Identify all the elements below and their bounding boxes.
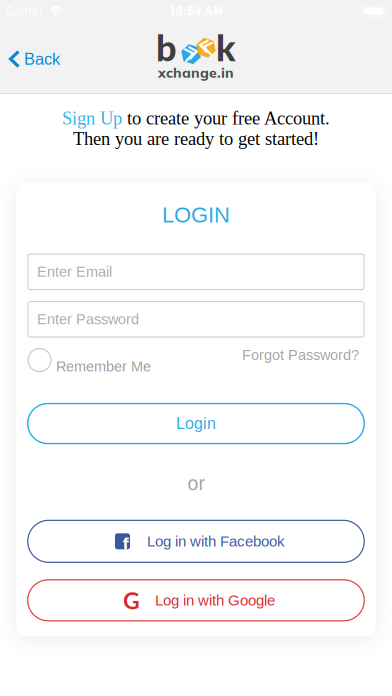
staticText: Enter Password	[37, 311, 139, 327]
staticText: Forgot Password?	[242, 347, 359, 363]
button[interactable]: G	[28, 580, 364, 621]
staticText: f	[122, 533, 128, 554]
staticText: Carrier	[5, 4, 43, 18]
staticText: Login	[176, 415, 216, 432]
button[interactable]: Sign Up	[62, 108, 122, 128]
staticText: G	[123, 586, 140, 614]
staticText: Back	[24, 50, 60, 68]
button[interactable]: Remember Me	[28, 349, 151, 372]
staticText: Log in with Google	[155, 592, 275, 609]
button[interactable]: f	[28, 520, 364, 562]
staticText: Enter Email	[37, 264, 112, 280]
staticText: k	[216, 26, 236, 69]
button[interactable]: Forgot Password?	[242, 352, 364, 368]
button[interactable]: Enter Email	[28, 254, 364, 290]
button[interactable]: Enter Password	[28, 302, 364, 337]
staticText: b	[156, 26, 177, 69]
staticText: 10:54 AM	[169, 4, 223, 18]
button[interactable]: Login	[28, 404, 364, 444]
staticText: or	[187, 473, 204, 494]
staticText: Then you are ready to get started!	[73, 128, 319, 149]
staticText: Log in with Facebook	[147, 533, 285, 550]
staticText: LOGIN	[162, 202, 230, 227]
button[interactable]: Back	[0, 48, 60, 67]
staticText: to create your free Account.	[122, 108, 330, 128]
staticText: Remember Me	[56, 358, 151, 375]
staticText: Sign Up	[62, 108, 122, 128]
staticText: xchange.in	[158, 64, 234, 81]
